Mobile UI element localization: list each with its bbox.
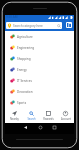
staticText: Sports	[17, 101, 27, 105]
button[interactable]: Nearby	[5, 109, 23, 123]
button[interactable]: Search category here	[6, 22, 62, 29]
staticText: Search category here	[13, 24, 43, 28]
staticText: Rewards	[43, 117, 54, 121]
staticText: Decoration	[17, 90, 33, 94]
button[interactable]: Shopping	[5, 53, 74, 64]
staticText: Nearby	[10, 117, 19, 121]
button[interactable]: Account	[57, 109, 74, 123]
staticText: Account	[61, 117, 71, 121]
button[interactable]: Recents	[52, 126, 56, 129]
button[interactable]: Sports	[5, 97, 74, 108]
button[interactable]: Back	[23, 126, 27, 129]
button[interactable]: Agriculture	[5, 31, 74, 42]
button[interactable]: Search	[23, 109, 40, 123]
button[interactable]: Home	[38, 126, 42, 129]
button[interactable]: Energy	[5, 64, 74, 75]
staticText: Agriculture	[17, 35, 33, 39]
button[interactable]: IT Services	[5, 75, 74, 86]
staticText: Energy	[17, 68, 27, 72]
staticText: Engineering	[17, 46, 35, 50]
staticText: IT Services	[17, 79, 32, 83]
button[interactable]: Engineering	[5, 42, 74, 53]
button[interactable]: Apps	[66, 22, 72, 28]
button[interactable]: Rewards	[40, 109, 57, 123]
staticText: Shopping	[17, 57, 31, 61]
staticText: 9:30 AM	[6, 15, 18, 19]
button[interactable]: Decoration	[5, 86, 74, 97]
staticText: Search	[27, 117, 36, 121]
